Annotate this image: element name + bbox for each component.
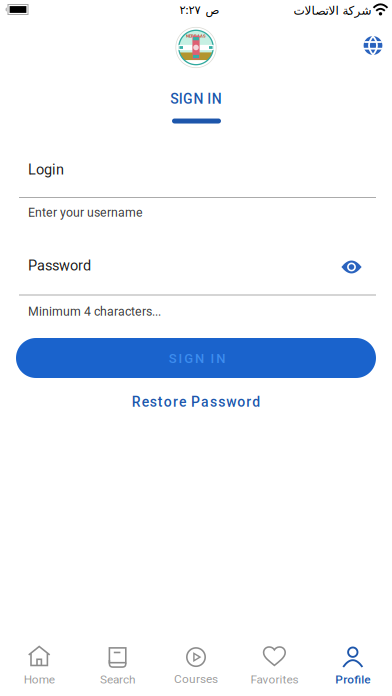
staticText: NEPRAAS (186, 33, 206, 38)
staticText: Minimum 4 characters... (28, 304, 161, 319)
staticText: ص (205, 3, 219, 17)
button[interactable]: Change language (363, 36, 382, 55)
button[interactable]: SIGN IN (16, 338, 376, 378)
staticText: SIGN IN (169, 351, 225, 366)
button[interactable]: Home (0, 646, 78, 686)
staticText: Favorites (250, 673, 298, 686)
staticText: Password (28, 257, 91, 274)
button[interactable]: Courses (157, 646, 235, 686)
button[interactable]: Show password (341, 259, 362, 274)
staticText: Courses (174, 672, 218, 686)
staticText: SIGN IN (170, 91, 222, 107)
staticText: Home (24, 673, 55, 686)
staticText: Login (28, 161, 64, 178)
button[interactable]: Search (79, 646, 157, 686)
staticText: Search (100, 673, 135, 686)
button[interactable]: Profile (314, 646, 392, 686)
staticText: Enter your username (28, 205, 143, 220)
button[interactable]: Restore Password (76, 391, 316, 413)
staticText: ٢:٢٧ (179, 3, 200, 17)
staticText: Profile (335, 673, 370, 686)
staticText: Restore Password (132, 394, 260, 410)
staticText: شركة الاتصالات (293, 3, 371, 17)
button[interactable]: Favorites (235, 646, 313, 686)
